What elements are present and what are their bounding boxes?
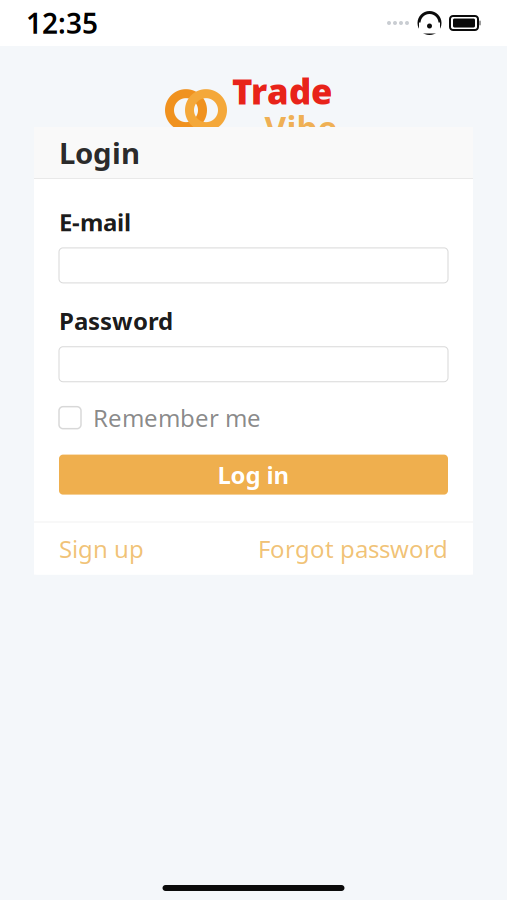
button[interactable]: Password text field xyxy=(59,347,448,382)
button[interactable]: Sign up xyxy=(59,533,144,565)
staticText: Trade xyxy=(232,68,332,114)
staticText: Sign up xyxy=(59,533,144,565)
button[interactable]: Log in xyxy=(59,455,448,495)
staticText: E-mail xyxy=(59,206,131,238)
staticText: 12:35 xyxy=(26,4,98,42)
staticText: Forgot password xyxy=(258,533,448,565)
staticText: Password xyxy=(59,305,173,337)
button[interactable]: Remember me xyxy=(59,402,448,434)
staticText: Remember me xyxy=(93,402,261,434)
button[interactable]: Forgot password xyxy=(258,533,448,565)
staticText: Vibe xyxy=(264,106,337,150)
button[interactable]: E-mail text field xyxy=(59,248,448,283)
staticText: Log in xyxy=(217,459,289,491)
staticText: Login xyxy=(59,133,140,172)
